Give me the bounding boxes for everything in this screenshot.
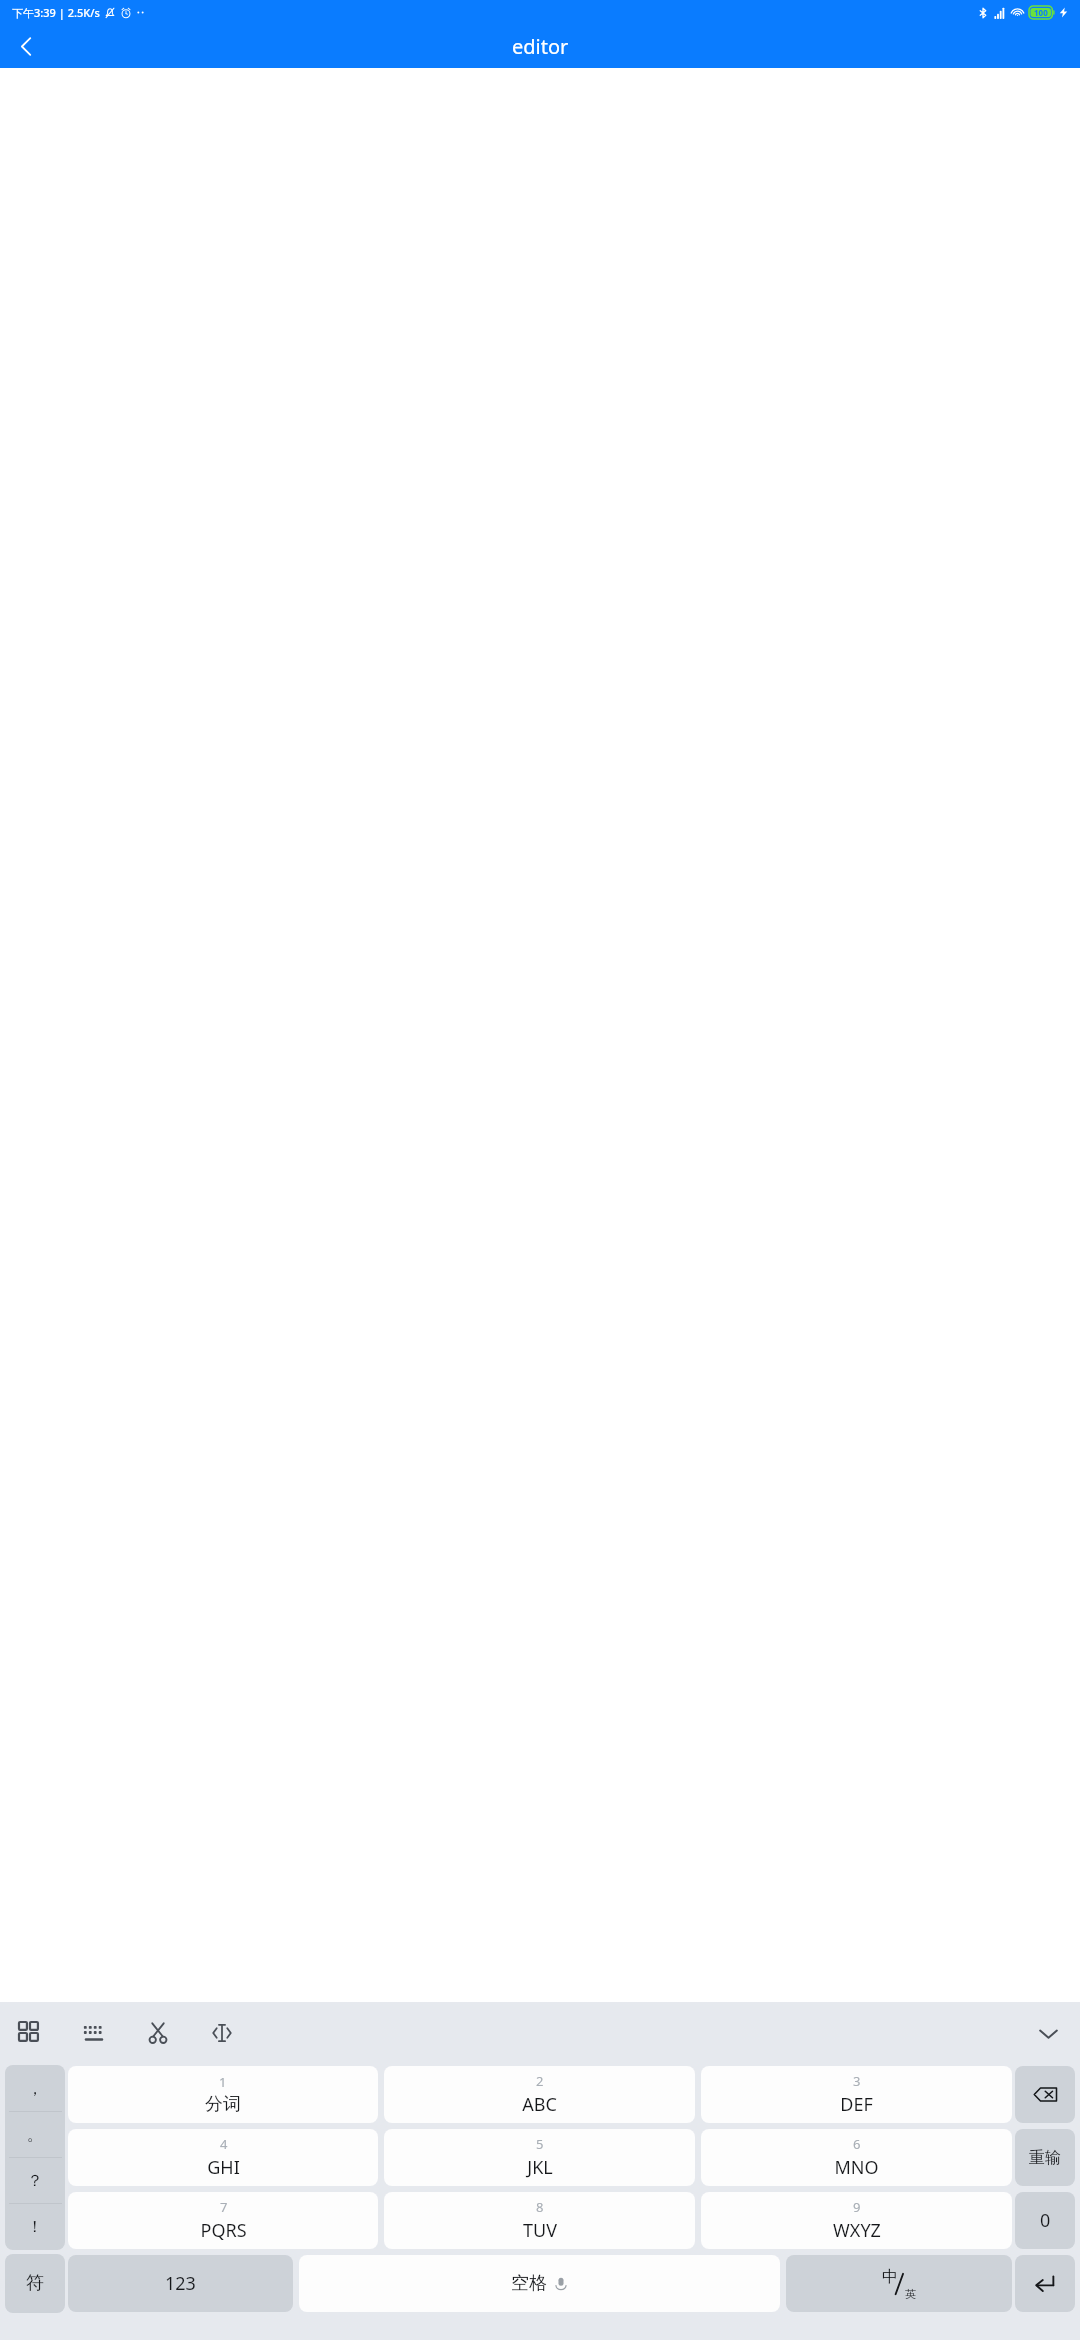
- staticText: 0: [1040, 2208, 1051, 2233]
- button[interactable]: Enter: [1015, 2255, 1075, 2312]
- staticText: MNO: [834, 2155, 879, 2180]
- staticText: 空格: [511, 2272, 547, 2295]
- staticText: 7: [220, 2198, 228, 2216]
- staticText: GHI: [207, 2155, 240, 2180]
- staticText: 4: [220, 2135, 228, 2153]
- staticText: DEF: [840, 2092, 873, 2117]
- staticText: ？: [27, 2171, 43, 2191]
- button[interactable]: Back: [0, 25, 52, 68]
- button[interactable]: ？: [5, 2158, 65, 2204]
- button[interactable]: 符: [5, 2254, 65, 2313]
- button[interactable]: 123: [68, 2255, 293, 2312]
- button[interactable]: Keyboard layout: [70, 2009, 118, 2057]
- staticText: ABC: [522, 2092, 557, 2117]
- staticText: TUV: [523, 2218, 557, 2243]
- staticText: 6: [853, 2135, 861, 2153]
- button[interactable]: 2: [384, 2066, 695, 2123]
- staticText: 100: [1034, 7, 1048, 18]
- staticText: JKL: [527, 2155, 553, 2180]
- staticText: 123: [165, 2271, 196, 2296]
- button[interactable]: Switch Chinese English: [786, 2255, 1012, 2312]
- staticText: editor: [512, 33, 569, 60]
- staticText: 分词: [205, 2093, 241, 2116]
- button[interactable]: 1: [68, 2066, 378, 2123]
- button[interactable]: 5: [384, 2129, 695, 2186]
- staticText: 中: [882, 2267, 898, 2287]
- button[interactable]: Cut: [134, 2009, 182, 2057]
- button[interactable]: Panels: [6, 2009, 54, 2057]
- staticText: 9: [853, 2198, 861, 2216]
- button[interactable]: 4: [68, 2129, 378, 2186]
- button[interactable]: Move cursor: [198, 2009, 246, 2057]
- button[interactable]: 重输: [1015, 2129, 1075, 2186]
- button[interactable]: Hide keyboard: [1024, 2009, 1072, 2057]
- staticText: 2: [536, 2072, 544, 2090]
- staticText: 重输: [1029, 2148, 1061, 2168]
- button[interactable]: 8: [384, 2192, 695, 2249]
- button[interactable]: 0: [1015, 2192, 1075, 2249]
- staticText: 符: [26, 2272, 44, 2295]
- staticText: ！: [27, 2217, 43, 2237]
- staticText: 8: [536, 2198, 544, 2216]
- staticText: 5: [536, 2135, 544, 2153]
- staticText: 1: [219, 2073, 227, 2091]
- staticText: ，: [27, 2079, 43, 2099]
- staticText: 。: [27, 2125, 43, 2145]
- staticText: PQRS: [200, 2218, 247, 2243]
- button[interactable]: ，: [5, 2065, 65, 2112]
- staticText: 英: [905, 2287, 916, 2301]
- button[interactable]: Backspace: [1015, 2066, 1075, 2123]
- button[interactable]: 3: [701, 2066, 1012, 2123]
- button[interactable]: 7: [68, 2192, 378, 2249]
- staticText: WXYZ: [833, 2218, 881, 2243]
- staticText: 3: [853, 2072, 861, 2090]
- button[interactable]: 6: [701, 2129, 1012, 2186]
- button[interactable]: 空格: [299, 2255, 780, 2312]
- staticText: 下午3:39 | 2.5K/s: [12, 5, 100, 20]
- button[interactable]: ！: [5, 2204, 65, 2250]
- button[interactable]: 9: [701, 2192, 1012, 2249]
- button[interactable]: 。: [5, 2112, 65, 2158]
